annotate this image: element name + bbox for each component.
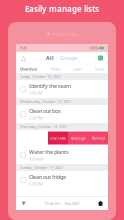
staticText: Clean out fridge: [29, 173, 66, 180]
staticText: Done: [95, 66, 104, 72]
staticText: Reassign: [70, 135, 85, 141]
button[interactable]: Identify the team: [16, 80, 108, 98]
staticText: 9:00 AM: [29, 156, 44, 162]
staticText: To-do list · Sep 2021: [44, 201, 79, 206]
staticText: Overdue: [20, 66, 37, 72]
button[interactable]: Menu: [20, 54, 27, 61]
button[interactable]: Clean out box: [16, 105, 108, 123]
staticText: mytodolist.app: [52, 31, 77, 37]
button[interactable]: Water the plants: [16, 146, 108, 164]
staticText: Clean out box: [29, 107, 61, 114]
button[interactable]: Filter: [19, 199, 28, 208]
staticText: Groups: [60, 54, 78, 62]
button[interactable]: Clean out fridge: [16, 171, 108, 189]
staticText: Water the plants: [29, 148, 69, 155]
button[interactable]: Remind: [88, 131, 108, 144]
staticText: Today: [50, 66, 60, 72]
staticText: All: [46, 54, 54, 62]
staticText: 2:30 PM: [29, 115, 43, 121]
staticText: 5:30 PM: [29, 181, 43, 187]
staticText: Sunday, October 17, 2021: [20, 165, 63, 170]
staticText: Remind: [91, 135, 104, 141]
staticText: Later: [73, 66, 82, 72]
staticText: 9:41: [20, 45, 27, 51]
staticText: Today, October 10, 2021: [20, 74, 61, 79]
staticText: Identify the team: [29, 82, 71, 89]
staticText: Easily manage lists: [25, 4, 99, 14]
staticText: Due Date: [50, 135, 66, 141]
staticText: 100%: [89, 45, 98, 51]
button[interactable]: Reassign: [68, 131, 88, 144]
button[interactable]: Due Date: [48, 131, 68, 144]
button[interactable]: Home: [96, 199, 105, 208]
staticText: Wednesday, October 13, 2021: [20, 99, 71, 104]
staticText: Thursday, October 14, 2021: [20, 124, 67, 129]
button[interactable]: New list: [97, 54, 104, 61]
staticText: 1:00 PM: [29, 90, 43, 96]
staticText: ▼: [21, 200, 25, 206]
staticText: △: [21, 54, 26, 62]
